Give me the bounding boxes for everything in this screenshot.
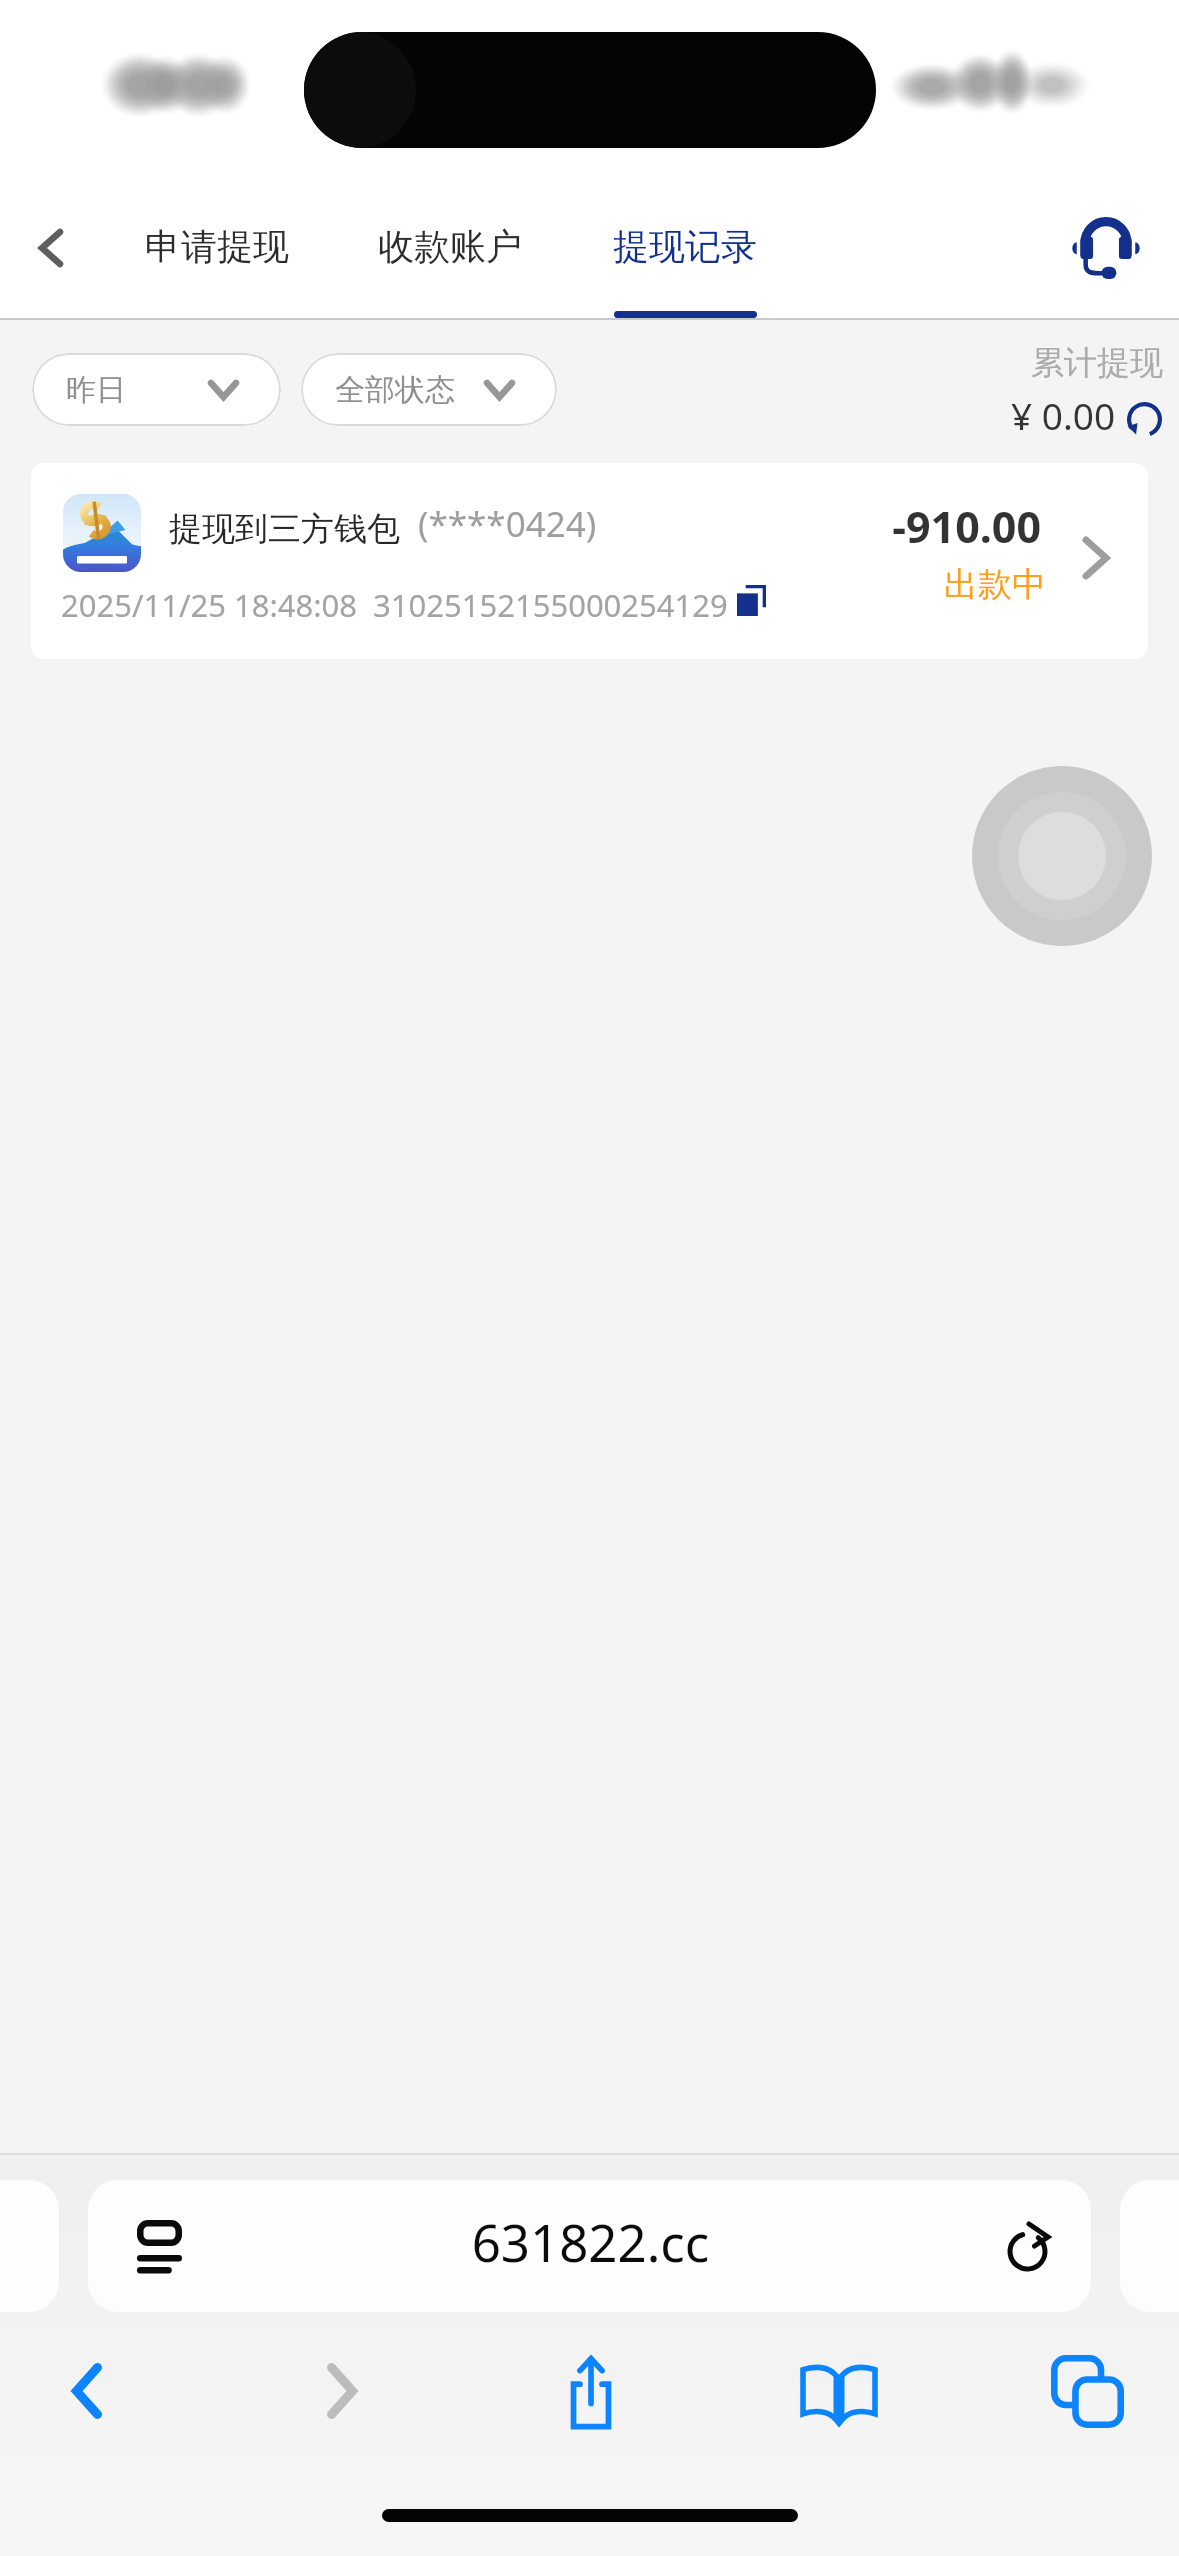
staticText: 昨日 bbox=[66, 371, 126, 409]
staticText: (****0424) bbox=[418, 500, 597, 548]
button[interactable]: Share bbox=[516, 2332, 666, 2450]
staticText: 提现记录 bbox=[613, 224, 757, 269]
button[interactable]: 收款账户 bbox=[364, 224, 536, 269]
staticText: 提现到三方钱包 bbox=[169, 508, 400, 550]
staticText: 631822.cc bbox=[178, 2207, 1003, 2276]
button[interactable]: Back bbox=[0, 192, 100, 302]
staticText: 收款账户 bbox=[378, 224, 522, 269]
button[interactable]: Page settings bbox=[137, 2220, 182, 2272]
staticText: 全部状态 bbox=[335, 371, 455, 409]
button[interactable]: Reload bbox=[1007, 2221, 1057, 2271]
button[interactable]: 提现到三方钱包 bbox=[31, 463, 1148, 659]
button[interactable]: Customer service bbox=[1058, 201, 1154, 297]
button[interactable]: 昨日 bbox=[32, 353, 281, 426]
staticText: -910.00 bbox=[892, 497, 1041, 556]
staticText: 出款中 bbox=[944, 563, 1046, 606]
button[interactable]: 全部状态 bbox=[301, 353, 557, 426]
button[interactable]: Refresh bbox=[1121, 396, 1167, 442]
button[interactable]: Back bbox=[12, 2332, 162, 2450]
staticText: 2025/11/25 18:48:08 31025152155000254129 bbox=[61, 584, 728, 626]
staticText: 申请提现 bbox=[145, 224, 289, 269]
button[interactable]: Forward bbox=[267, 2332, 417, 2450]
button[interactable]: 申请提现 bbox=[131, 224, 303, 269]
button[interactable]: Bookmarks bbox=[764, 2332, 914, 2450]
button[interactable]: Tabs bbox=[1012, 2332, 1162, 2450]
staticText: ¥ 0.00 bbox=[1011, 390, 1116, 440]
button[interactable]: Assistive Touch bbox=[972, 766, 1152, 946]
staticText: 累计提现 bbox=[1031, 342, 1163, 384]
button[interactable]: Copy bbox=[737, 585, 766, 616]
button[interactable]: 提现记录 bbox=[599, 224, 771, 318]
button[interactable]: Page settings bbox=[88, 2180, 1091, 2312]
